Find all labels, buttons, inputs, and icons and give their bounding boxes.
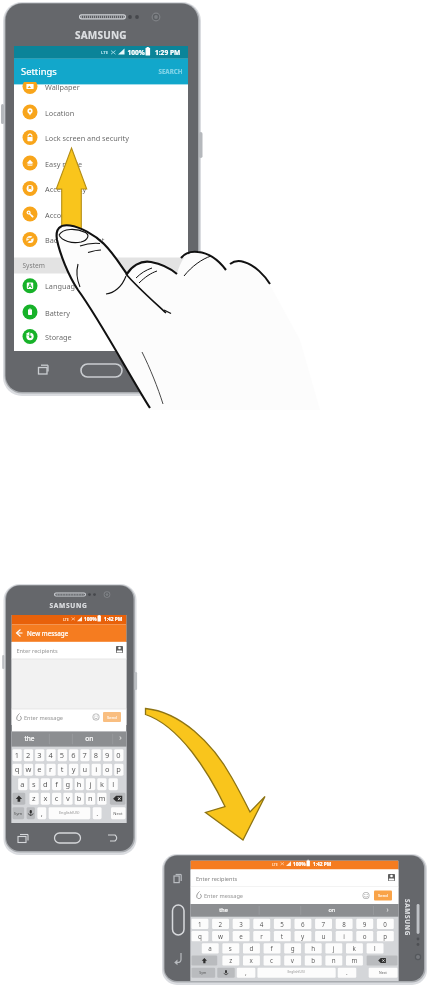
button[interactable]: Easy mode: [14, 151, 188, 176]
button[interactable]: Language and input: [14, 273, 188, 299]
button[interactable]: Recents: [32, 358, 54, 380]
button[interactable]: Enter recipients: [12, 642, 127, 659]
button[interactable]: Battery: [14, 299, 188, 324]
button[interactable]: Recents: [16, 830, 32, 846]
button[interactable]: Back: [170, 950, 186, 966]
button[interactable]: Backup and reset: [14, 227, 188, 253]
button[interactable]: Home: [81, 362, 122, 379]
button[interactable]: Home: [172, 905, 184, 935]
button[interactable]: Recents: [170, 870, 186, 886]
button[interactable]: Back: [12, 625, 30, 643]
button[interactable]: Accounts: [14, 202, 188, 227]
button[interactable]: Home: [54, 831, 82, 845]
button[interactable]: Search: [152, 58, 188, 82]
button[interactable]: Lock screen and security: [14, 125, 188, 151]
button[interactable]: Accessibility: [14, 176, 188, 202]
button[interactable]: Location: [14, 100, 188, 125]
button[interactable]: Send: [374, 889, 392, 903]
button[interactable]: Storage: [14, 324, 188, 350]
button[interactable]: Back: [105, 830, 121, 846]
button[interactable]: Send: [103, 710, 121, 724]
